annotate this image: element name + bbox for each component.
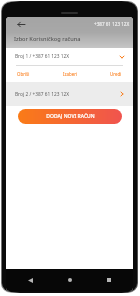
button[interactable]: Back: [18, 21, 25, 28]
button[interactable]: Obriši: [17, 71, 30, 77]
button[interactable]: Recent apps: [103, 274, 115, 286]
button[interactable]: Uredi: [110, 71, 122, 77]
staticText: Obriši: [17, 71, 30, 77]
staticText: Broj 2 / +387 61 123 12X: [15, 91, 70, 98]
staticText: DODAJ NOVI RAČUN: [46, 113, 95, 120]
staticText: Izbor Korisničkog računa: [14, 35, 81, 43]
staticText: Uredi: [110, 71, 122, 77]
staticText: Izaberi: [63, 71, 78, 77]
button[interactable]: Broj 1 / +387 61 123 12X: [6, 48, 133, 65]
staticText: Broj 1 / +387 61 123 12X: [15, 53, 70, 60]
staticText: +387 61 123 12X: [94, 21, 130, 27]
button[interactable]: Izaberi: [63, 71, 78, 77]
button[interactable]: DODAJ NOVI RAČUN: [18, 109, 122, 124]
button[interactable]: Home: [64, 274, 76, 286]
button[interactable]: Back: [24, 274, 36, 286]
button[interactable]: Broj 2 / +387 61 123 12X: [6, 82, 133, 106]
